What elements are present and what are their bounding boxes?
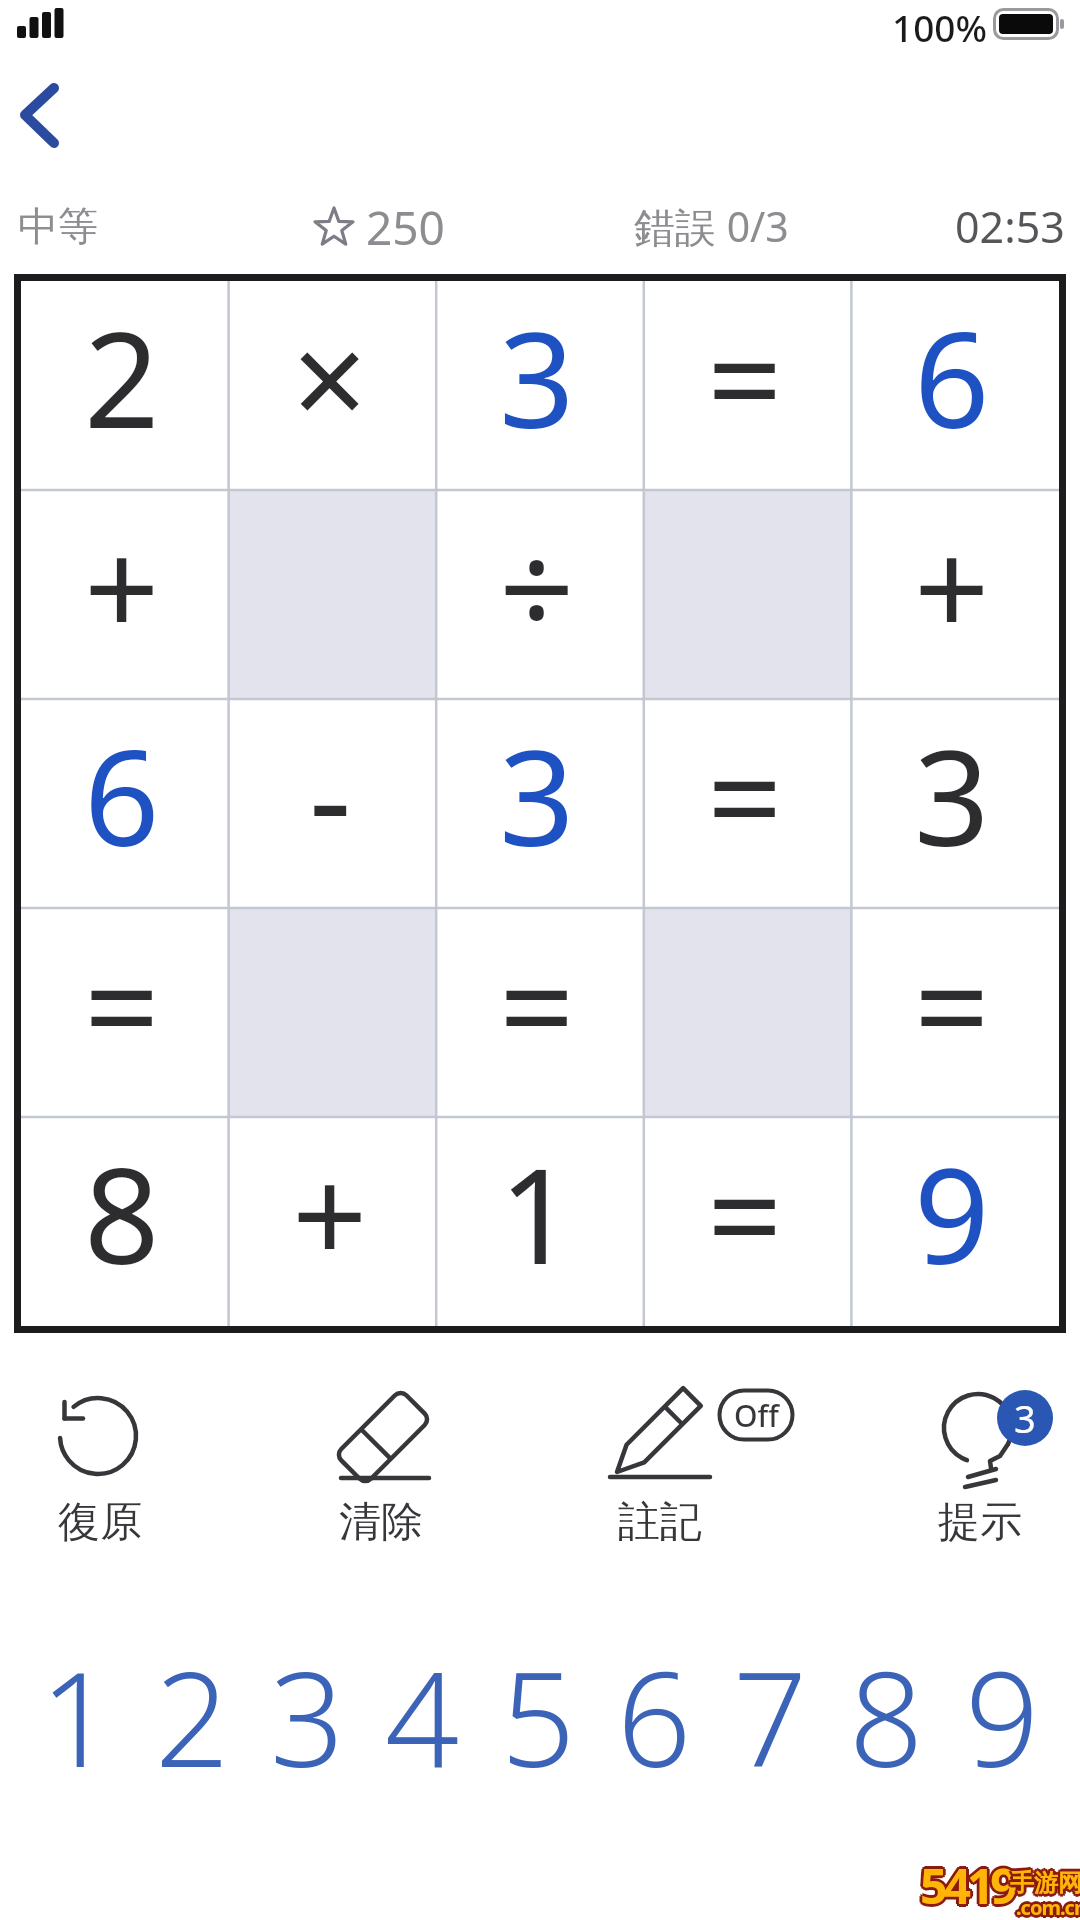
staticText: 5419 [922, 1851, 1016, 1916]
button[interactable]: + [21, 490, 229, 699]
button[interactable]: 3 [851, 699, 1059, 908]
staticText: 3 [270, 1628, 345, 1803]
staticText: 9 [965, 1628, 1040, 1803]
button[interactable]: 6 [851, 281, 1059, 490]
button[interactable]: + [851, 490, 1059, 699]
button[interactable]: = [21, 908, 229, 1117]
staticText: 9 [914, 1123, 990, 1303]
button[interactable]: 9 [944, 1628, 1060, 1803]
staticText: 4 [385, 1628, 460, 1803]
button[interactable]: ÷ [436, 490, 644, 699]
staticText: 5 [501, 1628, 576, 1803]
staticText: 錯誤 0/3 [634, 198, 789, 254]
staticText: .com.cn [1016, 1897, 1080, 1920]
staticText: 6 [84, 705, 160, 885]
button[interactable]: 8 [21, 1117, 229, 1326]
staticText: 手游网 [1008, 1870, 1080, 1900]
staticText: .com.cn [1013, 1894, 1080, 1920]
button[interactable]: 6 [596, 1628, 712, 1803]
button[interactable] [644, 490, 852, 699]
staticText: 3 [499, 705, 575, 885]
button[interactable]: 4 [365, 1628, 480, 1803]
staticText: 手游网 [1012, 1866, 1080, 1896]
button[interactable]: 1 [436, 1117, 644, 1326]
staticText: 1 [40, 1628, 115, 1803]
staticText: .com.cn [1016, 1891, 1080, 1918]
staticText: + [914, 496, 990, 676]
staticText: 5419 [917, 1853, 1011, 1918]
staticText: .com.cn [1019, 1894, 1080, 1920]
button[interactable]: 3 [436, 281, 644, 490]
staticText: ÷ [499, 496, 575, 676]
staticText: 6 [914, 287, 990, 467]
button[interactable]: Off [575, 1380, 805, 1560]
button[interactable]: = [851, 908, 1059, 1117]
button[interactable]: 2 [21, 281, 229, 490]
staticText: 8 [84, 1123, 160, 1303]
button[interactable]: + [229, 1117, 437, 1326]
staticText: .com.cn [1016, 1894, 1080, 1920]
button[interactable]: = [644, 281, 852, 490]
staticText: 復原 [58, 1496, 142, 1549]
staticText: 手游网 [1007, 1868, 1079, 1898]
staticText: 3 [914, 705, 990, 885]
staticText: - [309, 705, 352, 885]
staticText: 2 [155, 1628, 230, 1803]
staticText: 1 [499, 1123, 575, 1303]
staticText: 8 [849, 1628, 924, 1803]
staticText: = [707, 287, 783, 467]
button[interactable]: = [436, 908, 644, 1117]
staticText: 5419 [923, 1853, 1017, 1918]
button[interactable] [644, 908, 852, 1117]
staticText: = [707, 705, 783, 885]
staticText: 3 [499, 287, 575, 467]
button[interactable]: 9 [851, 1117, 1059, 1326]
button[interactable] [229, 908, 437, 1117]
button[interactable]: 復原 [30, 1380, 170, 1560]
button[interactable]: × [229, 281, 437, 490]
staticText: .com.cn [1018, 1892, 1080, 1919]
button[interactable]: 清除 [311, 1380, 451, 1560]
staticText: 中等 [18, 201, 98, 251]
button[interactable]: 1 [20, 1628, 135, 1803]
button[interactable]: 3 [905, 1380, 1055, 1560]
button[interactable]: - [229, 699, 437, 908]
staticText: 5419 [920, 1856, 1014, 1920]
staticText: = [707, 1123, 783, 1303]
staticText: 2 [84, 287, 160, 467]
button[interactable]: 3 [436, 699, 644, 908]
staticText: 5419 [920, 1850, 1014, 1915]
button[interactable]: 6 [21, 699, 229, 908]
staticText: 5419 [922, 1855, 1016, 1920]
staticText: 7 [733, 1628, 808, 1803]
staticText: 手游网 [1008, 1866, 1080, 1896]
button[interactable]: = [644, 699, 852, 908]
staticText: 手游网 [1010, 1868, 1080, 1898]
button[interactable]: 8 [828, 1628, 944, 1803]
staticText: 手游网 [1013, 1868, 1080, 1898]
button[interactable] [229, 490, 437, 699]
staticText: 5419 [918, 1855, 1012, 1920]
staticText: 清除 [339, 1496, 423, 1549]
staticText: 5419 [918, 1851, 1012, 1916]
staticText: 手游网 [1012, 1870, 1080, 1900]
staticText: Off [734, 1395, 779, 1436]
staticText: .com.cn [1018, 1896, 1080, 1920]
staticText: = [914, 914, 990, 1094]
staticText: .com.cn [1014, 1896, 1080, 1920]
staticText: .com.cn [1014, 1892, 1080, 1919]
button[interactable]: 2 [135, 1628, 250, 1803]
staticText: 100% [892, 2, 988, 44]
button[interactable]: 7 [712, 1628, 828, 1803]
staticText: + [292, 1123, 368, 1303]
staticText: 02:53 [955, 197, 1065, 256]
button[interactable]: = [644, 1117, 852, 1326]
button[interactable] [0, 72, 80, 162]
staticText: = [84, 914, 160, 1094]
staticText: 手游网 [1010, 1865, 1080, 1895]
button[interactable]: 3 [250, 1628, 365, 1803]
staticText: + [84, 496, 160, 676]
staticText: 提示 [938, 1496, 1022, 1549]
staticText: 註記 [618, 1496, 702, 1549]
button[interactable]: 5 [480, 1628, 596, 1803]
